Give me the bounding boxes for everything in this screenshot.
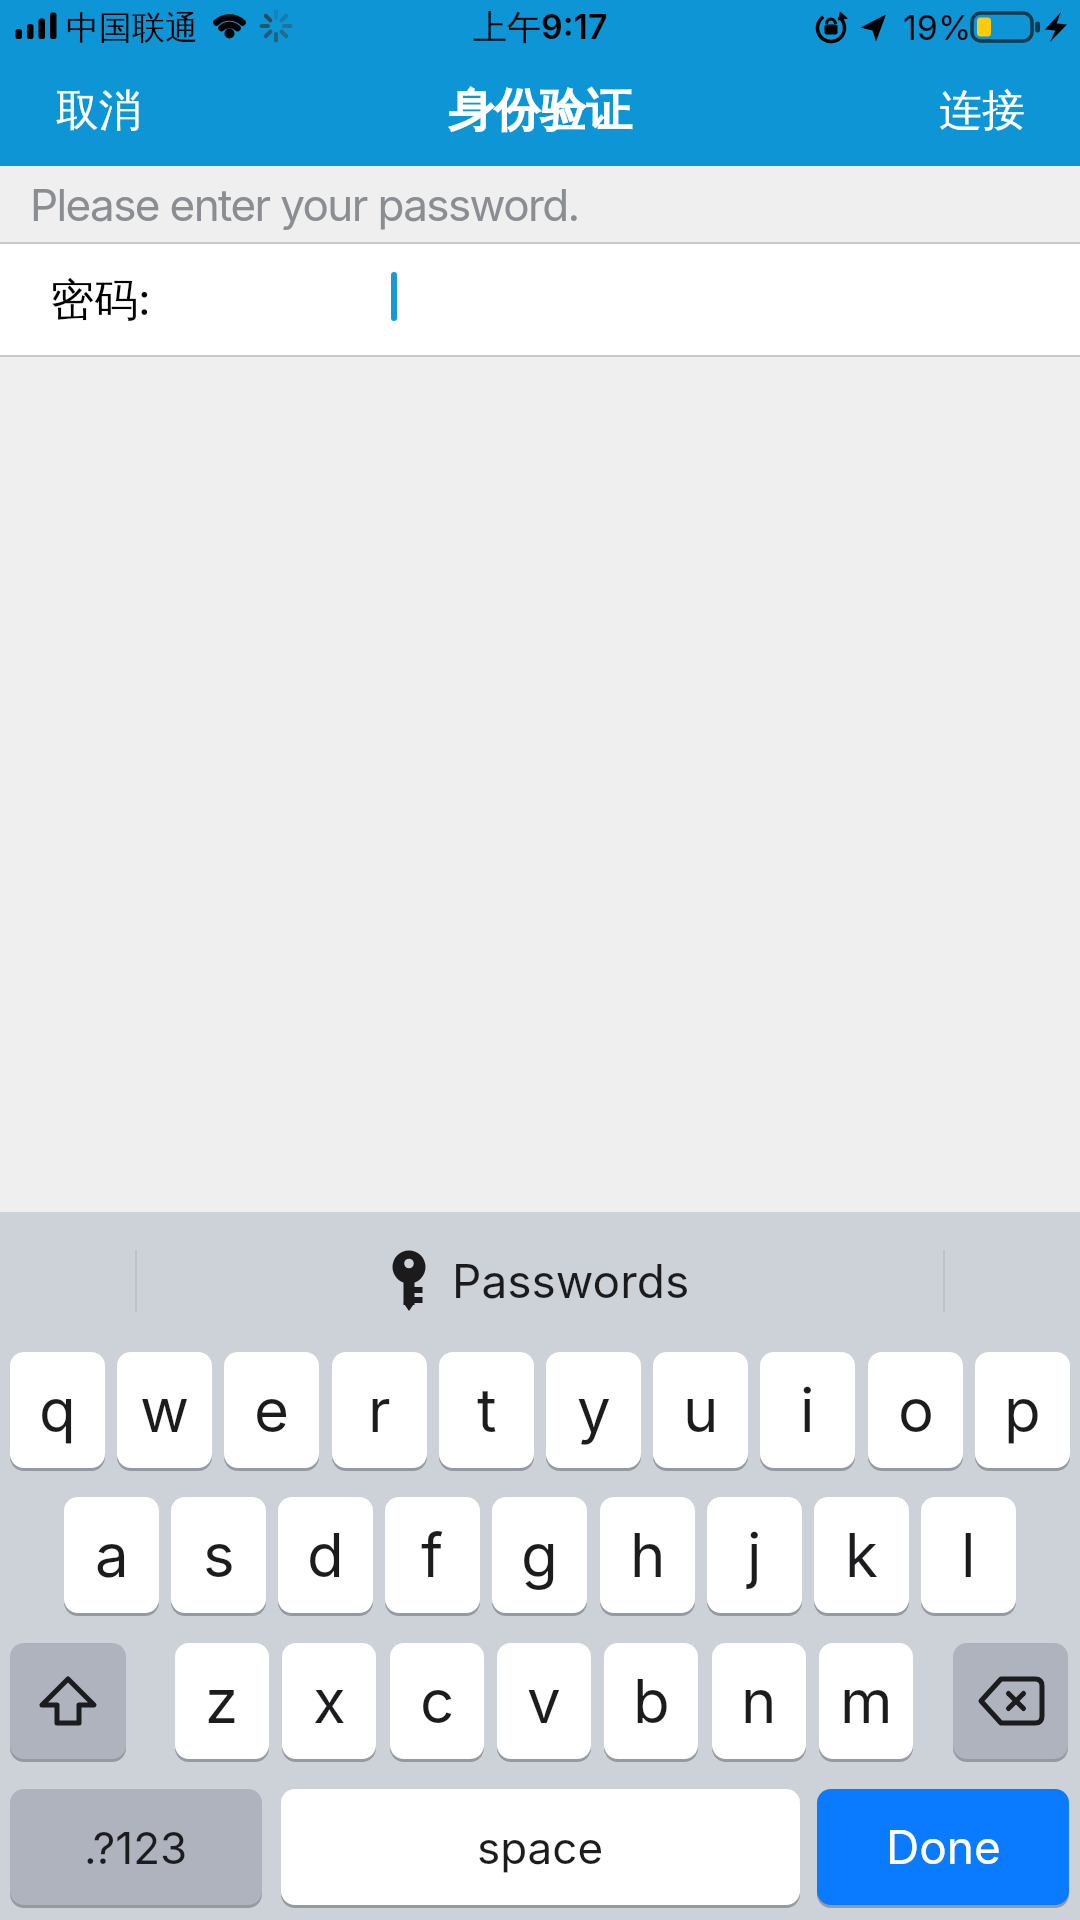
button[interactable]: .?123 — [10, 1789, 262, 1905]
staticText: t — [477, 1374, 497, 1447]
staticText: a — [95, 1519, 129, 1592]
button[interactable]: t — [439, 1352, 534, 1468]
staticText: Please enter your password. — [30, 178, 579, 231]
staticText: n — [741, 1665, 777, 1738]
staticText: v — [527, 1665, 561, 1738]
button[interactable]: Passwords — [0, 1248, 1080, 1314]
staticText: 身份验证 — [448, 82, 632, 140]
button[interactable]: Done — [817, 1789, 1069, 1905]
staticText: space — [477, 1821, 604, 1874]
staticText: z — [205, 1665, 239, 1738]
button[interactable]: n — [712, 1643, 806, 1759]
button[interactable]: w — [117, 1352, 212, 1468]
button[interactable]: e — [224, 1352, 319, 1468]
staticText: 连接 — [939, 84, 1025, 138]
staticText: b — [633, 1665, 670, 1738]
button[interactable]: h — [600, 1497, 695, 1613]
button[interactable]: a — [64, 1497, 159, 1613]
button[interactable]: j — [707, 1497, 802, 1613]
staticText: g — [521, 1519, 558, 1592]
staticText: Done — [886, 1819, 1001, 1875]
staticText: 密码: — [50, 272, 151, 328]
button[interactable]: g — [492, 1497, 587, 1613]
button[interactable]: r — [332, 1352, 427, 1468]
button[interactable]: o — [868, 1352, 963, 1468]
staticText: 取消 — [56, 84, 142, 138]
button[interactable]: v — [497, 1643, 591, 1759]
button[interactable]: l — [921, 1497, 1016, 1613]
staticText: i — [800, 1374, 815, 1447]
button[interactable]: s — [171, 1497, 266, 1613]
staticText: 19% — [903, 7, 972, 48]
button[interactable]: c — [390, 1643, 484, 1759]
button[interactable] — [953, 1643, 1068, 1759]
staticText: y — [577, 1374, 611, 1447]
button[interactable]: q — [10, 1352, 105, 1468]
staticText: u — [683, 1374, 719, 1447]
staticText: e — [254, 1374, 289, 1447]
button[interactable]: m — [819, 1643, 913, 1759]
button[interactable]: z — [175, 1643, 269, 1759]
button[interactable]: d — [278, 1497, 373, 1613]
staticText: r — [368, 1374, 391, 1447]
staticText: c — [420, 1665, 455, 1738]
staticText: Passwords — [452, 1253, 690, 1309]
staticText: o — [898, 1374, 934, 1447]
button[interactable]: b — [604, 1643, 698, 1759]
button[interactable]: 连接 — [939, 55, 1025, 166]
staticText: m — [840, 1665, 893, 1738]
staticText: d — [307, 1519, 344, 1592]
button[interactable]: x — [282, 1643, 376, 1759]
button[interactable]: space — [281, 1789, 800, 1905]
button[interactable]: y — [546, 1352, 641, 1468]
button[interactable] — [10, 1643, 126, 1759]
staticText: j — [747, 1519, 762, 1592]
button[interactable]: u — [653, 1352, 748, 1468]
staticText: h — [630, 1519, 666, 1592]
button[interactable]: i — [760, 1352, 855, 1468]
staticText: .?123 — [84, 1821, 188, 1874]
button[interactable]: 密码: — [0, 244, 1080, 355]
staticText: l — [961, 1519, 976, 1592]
staticText: w — [140, 1374, 190, 1447]
staticText: 上午9:17 — [473, 6, 608, 49]
button[interactable]: p — [975, 1352, 1070, 1468]
button[interactable]: 取消 — [56, 55, 142, 166]
staticText: x — [313, 1665, 346, 1738]
staticText: q — [39, 1374, 76, 1447]
staticText: f — [421, 1519, 444, 1592]
staticText: k — [845, 1519, 878, 1592]
staticText: s — [203, 1519, 235, 1592]
button[interactable]: f — [385, 1497, 480, 1613]
button[interactable]: k — [814, 1497, 909, 1613]
staticText: 中国联通 — [66, 7, 198, 49]
staticText: p — [1004, 1374, 1041, 1447]
